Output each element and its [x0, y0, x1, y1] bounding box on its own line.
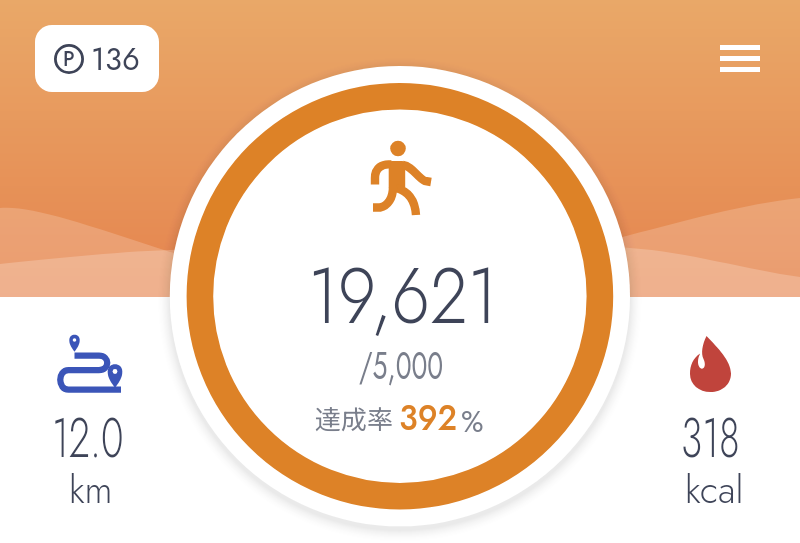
- button[interactable]: Menu: [720, 45, 760, 72]
- staticText: 19,621: [308, 240, 498, 353]
- button[interactable]: 318: [640, 330, 780, 520]
- staticText: 136: [91, 37, 140, 82]
- staticText: /5,000: [359, 339, 443, 392]
- staticText: kcal: [685, 462, 744, 517]
- staticText: 12.0: [52, 398, 124, 477]
- staticText: 392: [399, 391, 457, 443]
- staticText: 達成率: [315, 399, 394, 437]
- staticText: km: [69, 462, 113, 517]
- button[interactable]: P: [35, 25, 159, 92]
- staticText: 318: [681, 398, 740, 477]
- staticText: %: [461, 400, 484, 443]
- button[interactable]: 12.0: [20, 330, 160, 520]
- staticText: P: [63, 45, 75, 74]
